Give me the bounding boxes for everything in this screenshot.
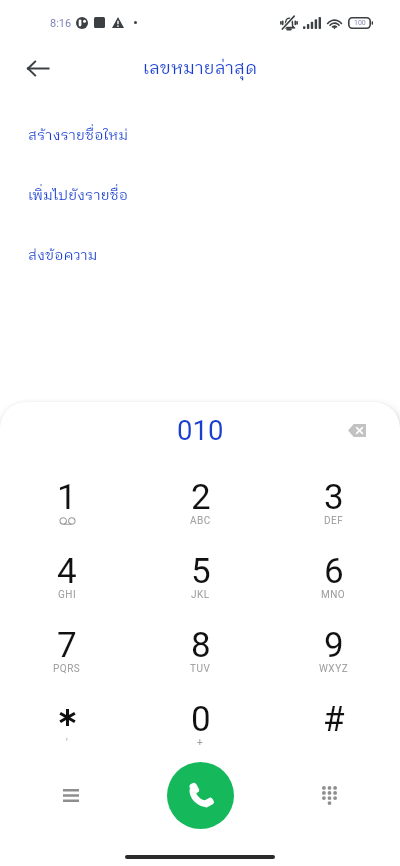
button[interactable]: 2 [134, 474, 267, 515]
button[interactable]: 0 [134, 696, 267, 737]
staticText: # [323, 699, 345, 740]
button[interactable]: เพิ่มไปยังรายชื่อ [0, 166, 400, 226]
button[interactable]: # [267, 696, 400, 737]
staticText: 1 [57, 477, 77, 518]
staticText: GHI [58, 589, 77, 601]
staticText: JKL [191, 589, 210, 601]
staticText: 2 [191, 477, 211, 518]
staticText: PQRS [53, 663, 81, 675]
staticText: 100 [354, 19, 366, 27]
button[interactable]: Call [167, 762, 234, 829]
staticText: + [197, 737, 204, 749]
staticText: 010 [177, 414, 224, 446]
button[interactable]: ' [0, 696, 134, 713]
staticText: ส่งข้อความ [28, 244, 98, 268]
staticText: ' [66, 737, 69, 749]
staticText: 9 [324, 625, 344, 666]
button[interactable]: 1 [0, 474, 134, 515]
button[interactable]: 7 [0, 622, 134, 663]
staticText: เพิ่มไปยังรายชื่อ [28, 184, 129, 208]
button[interactable]: More options [49, 773, 93, 817]
staticText: 3 [324, 477, 344, 518]
button[interactable]: 3 [267, 474, 400, 515]
button[interactable]: 6 [267, 548, 400, 589]
staticText: TUV [190, 663, 211, 675]
staticText: WXYZ [319, 663, 349, 675]
staticText: สร้างรายชื่อใหม่ [28, 124, 129, 148]
staticText: 8 [191, 625, 211, 666]
button[interactable]: ส่งข้อความ [0, 226, 400, 286]
button[interactable]: 8 [134, 622, 267, 663]
button[interactable]: 9 [267, 622, 400, 663]
staticText: 7 [57, 625, 77, 666]
button[interactable]: Back [18, 48, 58, 88]
button[interactable]: Backspace [338, 411, 376, 449]
staticText: เลขหมายล่าสุด [143, 54, 258, 83]
button[interactable]: 4 [0, 548, 134, 589]
button[interactable]: สร้างรายชื่อใหม่ [0, 106, 400, 166]
staticText: DEF [324, 515, 344, 527]
staticText: 4 [57, 551, 77, 592]
staticText: 5 [191, 551, 211, 592]
staticText: 6 [324, 551, 344, 592]
staticText: MNO [321, 589, 346, 601]
staticText: 0 [191, 699, 211, 740]
staticText: ABC [190, 515, 211, 527]
button[interactable]: Dialpad [307, 773, 351, 817]
button[interactable]: 5 [134, 548, 267, 589]
staticText: 8:16 [50, 17, 72, 30]
